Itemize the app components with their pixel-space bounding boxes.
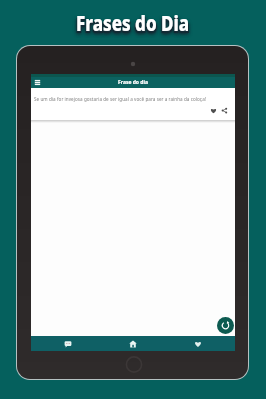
button[interactable]: Frase do dia xyxy=(31,77,235,88)
button[interactable] xyxy=(217,317,234,334)
button[interactable] xyxy=(165,336,230,351)
staticText: Frases do Dia xyxy=(75,11,189,39)
button[interactable] xyxy=(36,336,100,351)
staticText: Frases do Dia xyxy=(77,11,191,39)
staticText: Frases do Dia xyxy=(76,9,190,38)
staticText: Se um dia for invejosa gostaria de ser i… xyxy=(34,96,207,102)
staticText: Frase do dia xyxy=(118,79,148,86)
button[interactable]: Se um dia for invejosa gostaria de ser i… xyxy=(31,88,235,121)
button[interactable] xyxy=(100,336,165,351)
